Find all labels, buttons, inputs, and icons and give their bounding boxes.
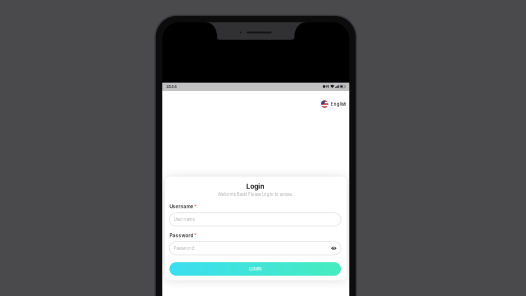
staticText: LOGIN: [249, 266, 261, 272]
staticText: Username: [173, 217, 195, 222]
staticText: N: [326, 84, 329, 89]
staticText: Password: [169, 233, 193, 238]
staticText: Welcome Back! Please Login to access.: [218, 192, 293, 197]
staticText: Username: [169, 204, 193, 209]
staticText: English: [331, 102, 347, 107]
button[interactable]: LOGIN: [169, 262, 341, 276]
staticText: Password: [173, 246, 194, 251]
staticText: *: [194, 204, 196, 209]
staticText: Login: [246, 182, 264, 190]
button[interactable]: English: [319, 99, 349, 109]
staticText: 23:44: [166, 84, 177, 89]
staticText: *: [194, 233, 196, 238]
